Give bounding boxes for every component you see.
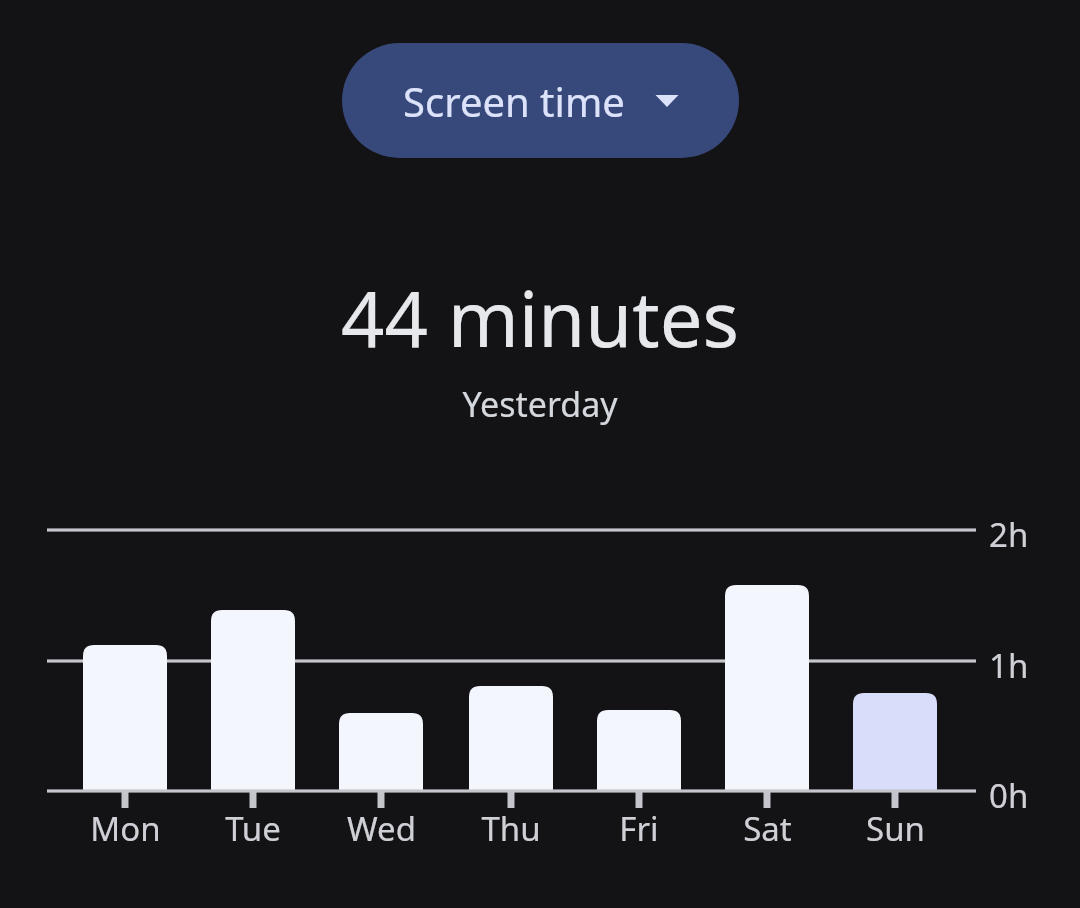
staticText: 1h [989, 643, 1029, 688]
staticText: Fri [619, 806, 659, 851]
staticText: Sun [866, 806, 925, 851]
staticText: Sat [743, 806, 792, 851]
staticText: Mon [90, 806, 161, 851]
staticText: Wed [347, 806, 416, 851]
button[interactable]: Screen time [342, 43, 739, 158]
staticText: 2h [989, 512, 1029, 557]
staticText: 0h [989, 773, 1029, 818]
other: Weekly screen time chart [0, 0, 1080, 908]
staticText: Thu [481, 806, 541, 851]
staticText: 44 minutes [0, 266, 1080, 370]
staticText: Screen time [403, 74, 625, 128]
staticText: Tue [225, 806, 281, 851]
staticText: Yesterday [0, 381, 1080, 427]
